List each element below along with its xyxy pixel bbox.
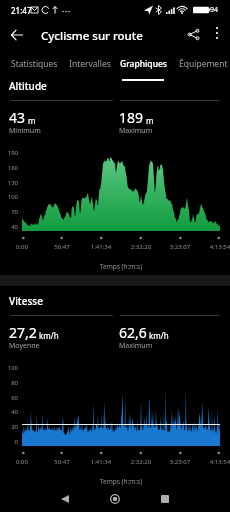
button[interactable]: Share: [179, 20, 207, 48]
staticText: Temps (h:m:s): [22, 262, 220, 271]
staticText: 3:23:07: [166, 243, 194, 251]
staticText: Temps (h:m:s): [22, 477, 220, 486]
staticText: 21:47: [11, 5, 32, 16]
staticText: 70: [0, 208, 18, 216]
staticText: Altitude: [9, 79, 47, 93]
staticText: 50:47: [48, 458, 76, 466]
staticText: 0: [0, 438, 18, 446]
staticText: 40: [0, 408, 18, 416]
staticText: m: [28, 115, 36, 126]
staticText: 4:13:54: [206, 458, 230, 466]
staticText: Vitesse: [9, 294, 43, 308]
staticText: 27,2: [9, 323, 37, 342]
button[interactable]: Home: [94, 487, 136, 511]
staticText: Minimum: [9, 126, 41, 136]
staticText: 4:13:54: [206, 243, 230, 251]
staticText: 130: [0, 179, 18, 187]
staticText: Équipement: [179, 58, 228, 70]
staticText: m: [146, 115, 154, 126]
staticText: Statistiques: [11, 58, 58, 70]
staticText: 160: [0, 164, 18, 172]
button[interactable]: Back: [2, 20, 31, 49]
staticText: 189: [119, 108, 144, 127]
staticText: 60: [0, 394, 18, 402]
staticText: 1:41:34: [87, 458, 115, 466]
staticText: Maximum: [119, 126, 153, 136]
staticText: Graphiques: [120, 58, 167, 70]
button[interactable]: More options: [204, 20, 230, 46]
staticText: 2:32:20: [127, 458, 155, 466]
staticText: 0:00: [8, 243, 36, 251]
staticText: 43: [9, 108, 26, 127]
staticText: Cyclisme sur route: [41, 28, 143, 44]
staticText: 100: [0, 193, 18, 201]
staticText: 50:47: [48, 243, 76, 251]
staticText: 20: [0, 423, 18, 431]
staticText: 2:32:20: [127, 243, 155, 251]
button[interactable]: Recent apps: [144, 487, 186, 511]
staticText: Intervalles: [69, 58, 111, 70]
button[interactable]: Statistiques: [6, 52, 63, 82]
staticText: km/h: [39, 330, 59, 341]
staticText: 80: [0, 379, 18, 387]
staticText: 3:23:07: [166, 458, 194, 466]
button[interactable]: Équipement: [172, 52, 230, 82]
staticText: 94: [210, 5, 219, 15]
staticText: km/h: [149, 330, 169, 341]
staticText: 62,6: [119, 323, 147, 342]
staticText: 190: [0, 149, 18, 157]
button[interactable]: Graphiques: [118, 52, 168, 82]
staticText: Moyenne: [9, 341, 40, 351]
staticText: 1:41:34: [87, 243, 115, 251]
button[interactable]: Back: [44, 487, 86, 511]
staticText: Maximum: [119, 341, 153, 351]
staticText: 0:00: [8, 458, 36, 466]
staticText: 100: [0, 364, 18, 372]
staticText: 40: [0, 223, 18, 231]
button[interactable]: Intervalles: [64, 52, 116, 82]
